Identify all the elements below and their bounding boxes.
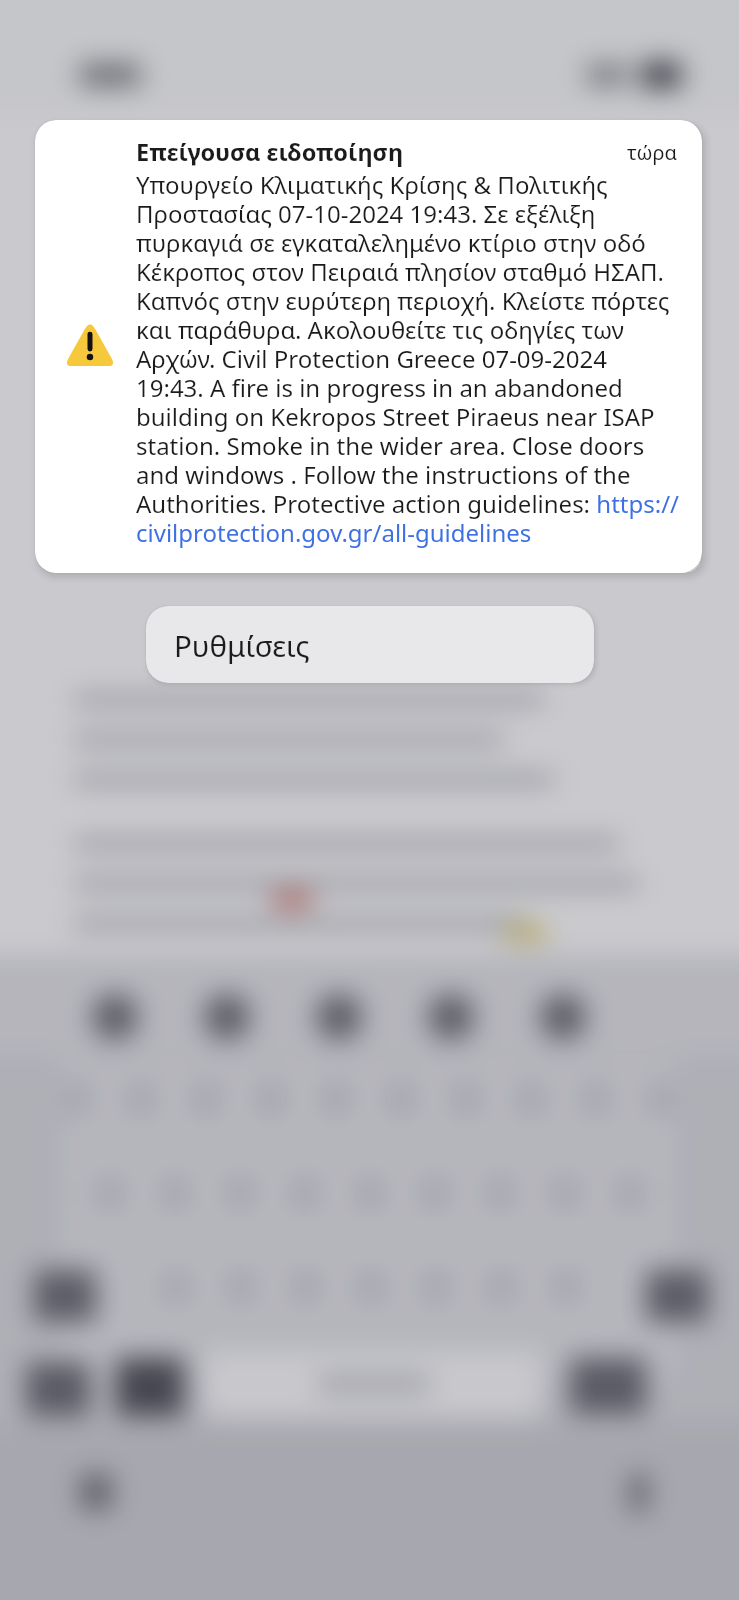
staticText: τώρα [627, 139, 677, 166]
staticText: Ρυθμίσεις [174, 625, 310, 665]
staticText: Υπουργείο Κλιματικής Κρίσης & Πολιτικής … [136, 168, 679, 549]
button[interactable]: Ρυθμίσεις [146, 606, 594, 683]
other: Warning alert [64, 320, 116, 366]
staticText: Επείγουσα ειδοποίηση [136, 136, 404, 168]
button[interactable]: Warning alert [35, 120, 702, 573]
